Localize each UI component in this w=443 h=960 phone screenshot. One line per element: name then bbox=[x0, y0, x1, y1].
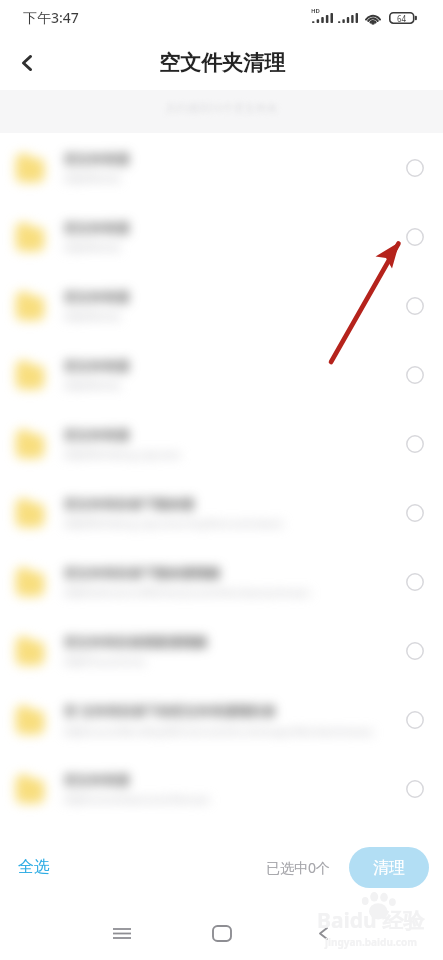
button[interactable]: 空文件夹清 bbox=[0, 133, 443, 202]
staticText: 下午3:47 bbox=[23, 8, 79, 27]
button[interactable]: Select folder bbox=[400, 636, 430, 666]
button[interactable]: Back bbox=[299, 909, 347, 957]
staticText: 全选 bbox=[18, 857, 50, 877]
button[interactable]: 空文件夹清 bbox=[0, 202, 443, 271]
button[interactable]: Select folder bbox=[400, 705, 430, 735]
button[interactable]: 空文件夹清 bbox=[0, 754, 443, 823]
button[interactable]: Select folder bbox=[400, 774, 430, 804]
staticText: 已选中0个 bbox=[266, 858, 331, 877]
button[interactable]: 空文件夹目录下面的清理器 bbox=[0, 547, 443, 616]
button[interactable]: 空文件夹目录下面的清 bbox=[0, 478, 443, 547]
staticText: 空文件夹清 bbox=[64, 358, 129, 374]
button[interactable]: Select folder bbox=[400, 360, 430, 390]
staticText: 空文件夹清 bbox=[64, 772, 129, 788]
button[interactable]: 空文件夹清 bbox=[0, 271, 443, 340]
button[interactable]: Back bbox=[4, 40, 50, 86]
staticText: 清理 bbox=[373, 858, 405, 878]
staticText: HD bbox=[311, 7, 320, 15]
button[interactable]: Select folder bbox=[400, 498, 430, 528]
staticText: Baidu 经验 bbox=[317, 906, 425, 935]
button[interactable]: 全选 bbox=[8, 850, 60, 884]
staticText: 空文件夹清 bbox=[64, 220, 129, 236]
staticText: 空文件夹清 bbox=[64, 427, 129, 443]
button[interactable]: Select folder bbox=[400, 291, 430, 321]
button[interactable]: 空文件夹清 bbox=[0, 340, 443, 409]
staticText: 空文件夹清 bbox=[64, 151, 129, 167]
button[interactable]: Home bbox=[198, 909, 246, 957]
button[interactable]: Select folder bbox=[400, 153, 430, 183]
button[interactable]: Recent apps bbox=[98, 909, 146, 957]
staticText: 空文件夹目录里面清理器 bbox=[64, 634, 207, 650]
staticText: jingyan.baidu.com bbox=[325, 935, 417, 949]
button[interactable]: Select folder bbox=[400, 567, 430, 597]
button[interactable]: Select folder bbox=[400, 429, 430, 459]
staticText: 空文件夹目录下面的清理器 bbox=[64, 565, 220, 581]
staticText: 64 bbox=[397, 13, 407, 24]
staticText: 空 文件夹目录下的空文件夹清理目录 bbox=[64, 702, 276, 720]
button[interactable]: 空文件夹清 bbox=[0, 409, 443, 478]
staticText: 空文件夹清 bbox=[64, 289, 129, 305]
staticText: 空文件夹清理 bbox=[159, 50, 285, 76]
staticText: 空文件夹目录下面的清 bbox=[64, 496, 194, 512]
button[interactable]: 清理 bbox=[349, 847, 429, 888]
button[interactable]: Select folder bbox=[400, 222, 430, 252]
button[interactable]: 空文件夹目录里面清理器 bbox=[0, 616, 443, 685]
button[interactable]: 空 文件夹目录下的空文件夹清理目录 bbox=[0, 685, 443, 754]
